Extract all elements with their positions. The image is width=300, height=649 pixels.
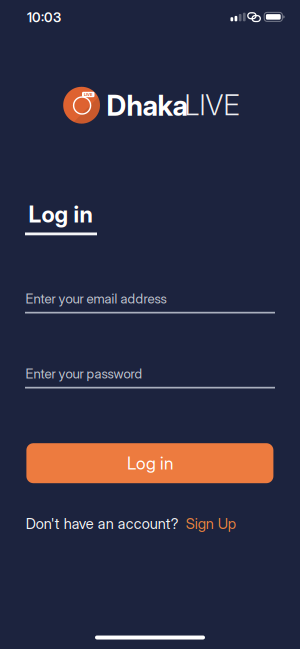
staticText: Enter your email address (25, 291, 166, 306)
staticText: LIVE (184, 88, 239, 121)
button[interactable]: Enter your password (25, 366, 275, 392)
staticText: Dhaka (106, 89, 187, 122)
button[interactable]: Enter your email address (25, 291, 275, 317)
button[interactable]: Log in (26, 443, 273, 483)
staticText: Log in (127, 453, 173, 473)
staticText: Don't have an account? (26, 515, 179, 532)
staticText: 10:03 (27, 9, 61, 25)
staticText: LIVE (84, 92, 92, 97)
button[interactable]: Sign Up (186, 515, 236, 532)
staticText: Sign Up (186, 515, 236, 532)
staticText: Enter your password (25, 366, 142, 381)
staticText: Log in (28, 201, 92, 228)
